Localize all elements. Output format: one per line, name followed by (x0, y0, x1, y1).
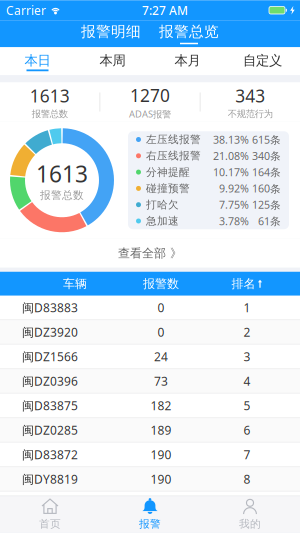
staticText: 9 (243, 495, 250, 511)
staticText: 闽D83875 (22, 397, 78, 413)
staticText: Carrier (6, 2, 46, 18)
button[interactable]: 本月 (150, 47, 225, 75)
staticText: 21.08% (213, 149, 249, 163)
staticText: 急加速 (146, 214, 179, 227)
staticText: 125条 (252, 198, 281, 212)
staticText: 闽DZ3920 (22, 324, 78, 340)
staticText: 61条 (258, 214, 281, 228)
button[interactable]: 自定义 (225, 47, 300, 75)
button[interactable]: 闽D83875 (0, 394, 300, 418)
staticText: 8 (243, 471, 250, 487)
staticText: 闽D83872 (22, 446, 78, 462)
button[interactable]: 闽DY8819 (0, 467, 300, 492)
staticText: 191 (150, 495, 171, 511)
button[interactable]: 首页 (0, 493, 100, 533)
staticText: 报警总数 (40, 189, 84, 202)
button[interactable]: 闽DZ1566 (0, 345, 300, 369)
staticText: 182 (150, 397, 171, 413)
staticText: 打哈欠 (146, 198, 179, 211)
staticText: 报警总数 (32, 108, 68, 120)
staticText: 160条 (252, 181, 281, 195)
staticText: 164条 (252, 165, 281, 179)
staticText: 本周 (99, 52, 125, 69)
staticText: 10.17% (213, 165, 249, 179)
staticText: ADAS报警 (129, 108, 171, 120)
staticText: 本日 (24, 52, 50, 69)
staticText: 右压线报警 (146, 149, 201, 162)
staticText: 343 (235, 84, 265, 107)
button[interactable]: 排名 (194, 272, 300, 296)
staticText: 6 (243, 422, 250, 438)
staticText: 5 (243, 397, 250, 413)
staticText: 38.13% (213, 132, 249, 147)
staticText: 自定义 (243, 52, 282, 69)
staticText: 首页 (39, 517, 61, 530)
staticText: 340条 (252, 149, 281, 163)
staticText: 190 (150, 446, 171, 462)
staticText: 报警 (139, 517, 161, 530)
staticText: 7.75% (219, 198, 249, 212)
button[interactable]: 闽D83883 (0, 296, 300, 320)
button[interactable]: 报警明细 (81, 20, 141, 47)
staticText: 本月 (174, 52, 200, 69)
staticText: 排名 (231, 276, 255, 291)
staticText: 左压线报警 (146, 133, 201, 146)
button[interactable]: 本周 (75, 47, 150, 75)
staticText: 3.78% (219, 214, 249, 228)
staticText: 3 (243, 348, 250, 364)
staticText: 0 (157, 324, 164, 340)
staticText: 闽DZ1566 (22, 348, 78, 364)
staticText: 190 (150, 471, 171, 487)
staticText: 1613 (36, 159, 88, 189)
staticText: 24 (154, 348, 168, 364)
button[interactable]: 闽DZ3920 (0, 320, 300, 345)
staticText: 闽DZ0285 (22, 422, 78, 438)
staticText: 闽DZ0396 (22, 373, 78, 389)
staticText: 1 (243, 299, 250, 315)
staticText: 闽DY8819 (22, 471, 78, 487)
staticText: 2 (243, 324, 250, 340)
staticText: 1613 (30, 84, 70, 107)
staticText: 闽DZ6569 (22, 495, 78, 511)
button[interactable]: 闽DZ0285 (0, 418, 300, 443)
staticText: 9.92% (219, 181, 249, 195)
button[interactable]: 我的 (200, 493, 300, 533)
staticText: 报警总览 (159, 22, 219, 40)
staticText: 闽D83883 (22, 299, 78, 315)
staticText: 不规范行为 (228, 108, 273, 120)
staticText: 1270 (130, 84, 170, 107)
button[interactable]: 报警 (100, 493, 200, 533)
staticText: 4 (243, 373, 250, 389)
button[interactable]: 查看全部 》 (0, 239, 300, 268)
button[interactable]: 闽DZ0396 (0, 369, 300, 394)
staticText: 分神提醒 (146, 165, 190, 179)
staticText: 报警数 (143, 276, 179, 291)
button[interactable]: 闽DZ6569 (0, 492, 300, 516)
staticText: 车辆 (63, 276, 87, 291)
staticText: 我的 (239, 517, 261, 530)
button[interactable]: 报警总览 (159, 20, 219, 47)
staticText: 报警明细 (81, 22, 141, 40)
staticText: 7 (243, 446, 250, 462)
staticText: 615条 (252, 132, 281, 147)
staticText: 189 (150, 422, 171, 438)
staticText: 碰撞预警 (146, 182, 190, 195)
staticText: 73 (154, 373, 168, 389)
button[interactable]: 闽D83872 (0, 443, 300, 467)
staticText: 查看全部 》 (118, 246, 182, 261)
staticText: 7:27 AM (142, 2, 188, 18)
button[interactable]: 本日 (0, 47, 75, 75)
staticText: 0 (157, 299, 164, 315)
